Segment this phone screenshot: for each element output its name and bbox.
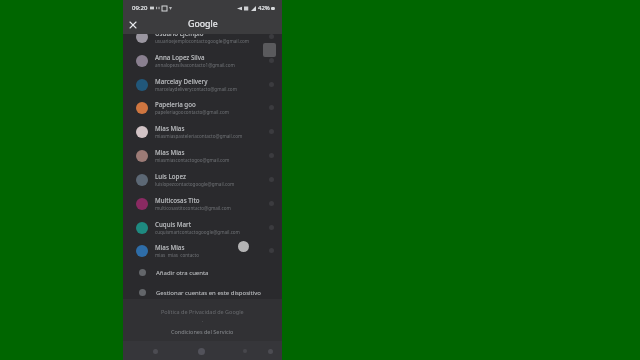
- staticText: annalopezsilvacontacto1@gmail.com: [155, 62, 235, 68]
- staticText: multicosastitocontacto@gmail.com: [155, 205, 231, 211]
- staticText: Política de Privacidad de Google: [161, 308, 244, 315]
- button[interactable]: Close: [123, 15, 142, 34]
- staticText: usuarioejemplocontactogoogle@gmail.com: [155, 38, 250, 44]
- button[interactable]: Marcelay Delivery: [123, 73, 282, 96]
- button[interactable]: Rotate screen: [262, 343, 278, 359]
- staticText: mias mias contacto: [155, 252, 199, 258]
- staticText: 09:20: [132, 4, 148, 12]
- button[interactable]: Cuquis Mart: [123, 216, 282, 239]
- staticText: Condiciones del Servicio: [171, 328, 234, 335]
- button[interactable]: Condiciones del Servicio: [168, 326, 237, 337]
- button[interactable]: Añadir otra cuenta: [123, 264, 282, 281]
- button[interactable]: Papeleria goo: [123, 96, 282, 119]
- button[interactable]: Home: [193, 343, 209, 359]
- staticText: Mias Mias: [155, 243, 185, 251]
- staticText: miasmiascontactogoo@gmail.com: [155, 157, 230, 163]
- staticText: Google: [188, 18, 218, 30]
- staticText: papeleriagoocontacto@gmail.com: [155, 109, 230, 115]
- button[interactable]: Mias Mias: [123, 239, 282, 262]
- staticText: marcelaydeliverycontacto@gmail.com: [155, 86, 237, 92]
- staticText: Mias Mias: [155, 148, 185, 156]
- button[interactable]: Gestionar cuentas en este dispositivo: [123, 284, 282, 301]
- button[interactable]: Recents: [237, 343, 253, 359]
- button[interactable]: Usuario Ejemplo: [123, 25, 282, 48]
- button[interactable]: Back: [147, 343, 163, 359]
- button[interactable]: Mias Mias: [123, 120, 282, 143]
- staticText: Cuquis Mart: [155, 220, 192, 228]
- staticText: Añadir otra cuenta: [156, 269, 209, 277]
- staticText: Mias Mias: [155, 124, 185, 132]
- staticText: 42%: [258, 4, 270, 12]
- button[interactable]: Anna Lopez Silva: [123, 49, 282, 72]
- staticText: Marcelay Delivery: [155, 77, 208, 85]
- staticText: ·: [202, 318, 204, 325]
- button[interactable]: Multicosas Tito: [123, 192, 282, 215]
- staticText: miasmiaspasteleriacontacto@gmail.com: [155, 133, 243, 139]
- staticText: Luis Lopez: [155, 172, 186, 180]
- staticText: cuquismartcontactogoogle@gmail.com: [155, 229, 240, 235]
- button[interactable]: Política de Privacidad de Google: [158, 306, 247, 317]
- button[interactable]: Luis Lopez: [123, 168, 282, 191]
- staticText: Multicosas Tito: [155, 196, 200, 204]
- staticText: luislopezcontactogoogle@gmail.com: [155, 181, 235, 187]
- staticText: Papeleria goo: [155, 100, 196, 108]
- staticText: Usuario Ejemplo: [155, 29, 204, 37]
- staticText: Gestionar cuentas en este dispositivo: [156, 289, 261, 297]
- button[interactable]: Mias Mias: [123, 144, 282, 167]
- staticText: Anna Lopez Silva: [155, 53, 205, 61]
